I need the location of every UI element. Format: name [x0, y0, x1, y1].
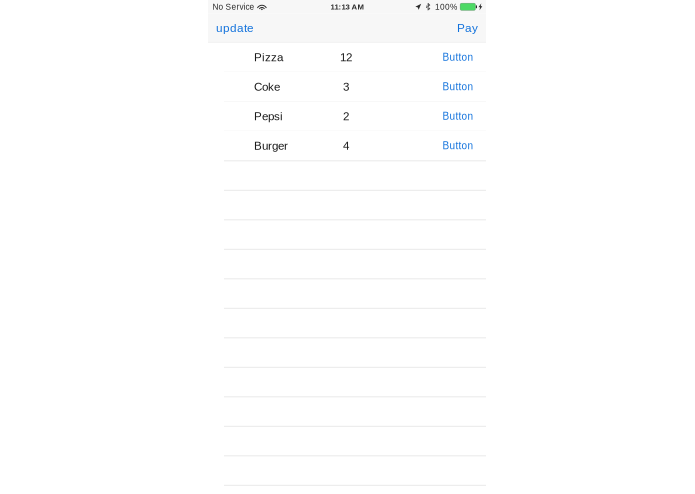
staticText: Button	[442, 111, 473, 122]
staticText: 12	[340, 51, 352, 64]
button[interactable]: Button	[429, 101, 487, 131]
button[interactable]: Pay	[449, 14, 486, 42]
staticText: 11:13 AM	[330, 2, 363, 11]
staticText: Burger	[254, 139, 288, 152]
staticText: Coke	[254, 80, 280, 93]
staticText: Button	[442, 52, 473, 63]
staticText: Button	[442, 81, 473, 92]
button[interactable]: Button	[429, 72, 487, 101]
button[interactable]: Button	[429, 131, 487, 160]
staticText: Pay	[457, 21, 478, 35]
staticText: 100%	[435, 2, 457, 11]
staticText: update	[216, 21, 254, 35]
staticText: Pepsi	[254, 110, 283, 123]
staticText: 3	[343, 80, 349, 93]
button[interactable]: Button	[429, 42, 487, 72]
staticText: 2	[343, 110, 349, 123]
button[interactable]: update	[208, 14, 262, 42]
staticText: 4	[343, 139, 349, 152]
staticText: Button	[442, 140, 473, 151]
staticText: Pizza	[254, 51, 283, 64]
staticText: No Service	[213, 2, 255, 11]
